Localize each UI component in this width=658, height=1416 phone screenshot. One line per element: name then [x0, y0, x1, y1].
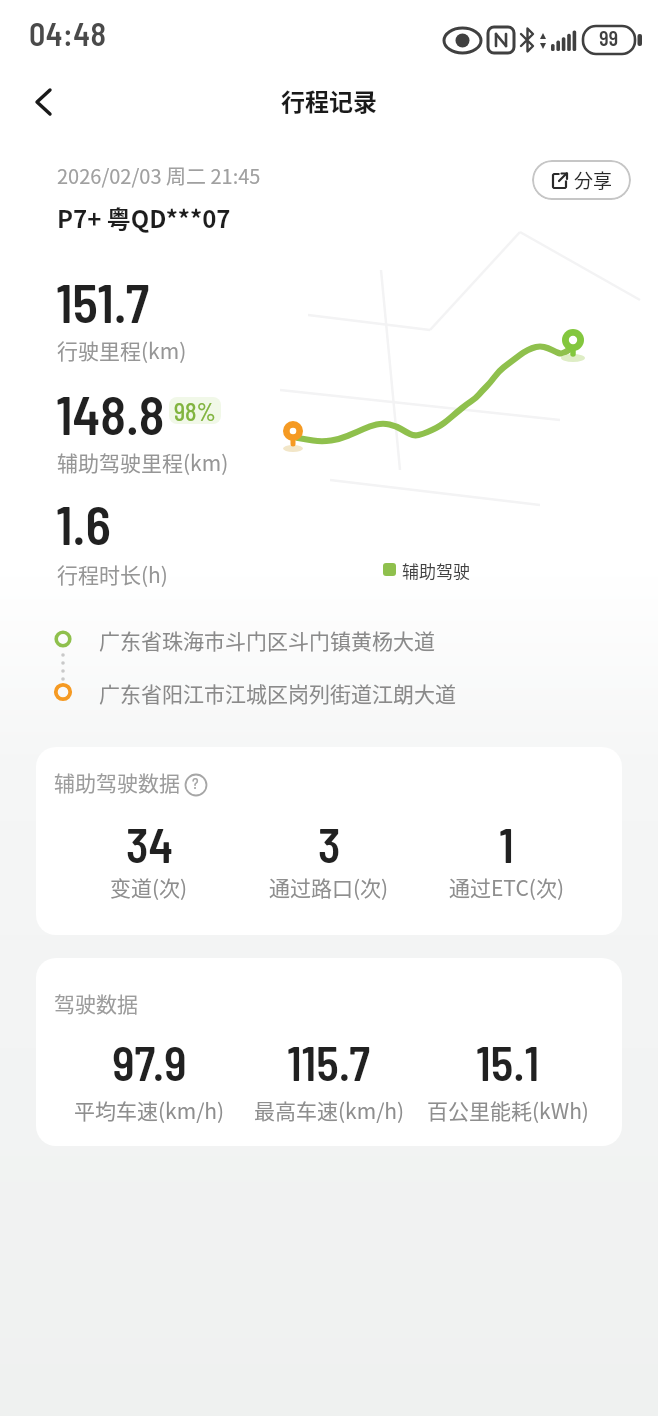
- staticText: 百公里能耗(kWh): [427, 1095, 589, 1125]
- staticText: 98%: [174, 397, 216, 424]
- staticText: ?: [192, 774, 199, 792]
- staticText: 115.7: [287, 1034, 371, 1090]
- staticText: 151.7: [56, 270, 150, 334]
- staticText: 通过ETC(次): [449, 872, 564, 902]
- staticText: 行程时长(h): [57, 559, 168, 589]
- staticText: 1.6: [56, 492, 111, 556]
- button[interactable]: [26, 82, 66, 122]
- staticText: 97.9: [112, 1034, 187, 1090]
- staticText: 分享: [574, 166, 613, 194]
- staticText: 广东省珠海市斗门区斗门镇黄杨大道: [99, 625, 435, 655]
- staticText: 34: [126, 816, 173, 872]
- staticText: 行程记录: [281, 83, 377, 118]
- staticText: 辅助驾驶数据: [54, 767, 180, 797]
- staticText: 通过路口(次): [269, 872, 389, 902]
- staticText: 148.8: [56, 382, 165, 446]
- staticText: 辅助驾驶里程(km): [57, 447, 229, 477]
- button[interactable]: [36, 958, 622, 1146]
- staticText: 15.1: [476, 1034, 540, 1090]
- staticText: 广东省阳江市江城区岗列街道江朗大道: [99, 678, 456, 708]
- button[interactable]: [36, 747, 622, 935]
- staticText: 变道(次): [110, 872, 188, 902]
- staticText: 最高车速(km/h): [254, 1095, 405, 1125]
- staticText: 驾驶数据: [54, 988, 138, 1018]
- staticText: 2026/02/03 周二 21:45: [57, 161, 261, 190]
- staticText: 平均车速(km/h): [74, 1095, 225, 1125]
- staticText: 行驶里程(km): [57, 335, 187, 365]
- staticText: 99: [599, 26, 619, 50]
- button[interactable]: 分享: [532, 160, 631, 200]
- staticText: 1: [499, 816, 514, 872]
- staticText: P7+ 粤QD***07: [57, 200, 231, 235]
- staticText: 04:48: [29, 14, 107, 52]
- staticText: 辅助驾驶: [402, 558, 470, 583]
- staticText: 3: [318, 816, 341, 872]
